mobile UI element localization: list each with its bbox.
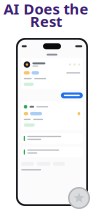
button[interactable] [21,147,83,157]
button[interactable] [21,133,83,144]
button[interactable] [21,102,83,130]
staticText: AI Does the [3,0,88,18]
staticText: Rest [30,11,62,31]
button[interactable] [61,92,83,98]
button[interactable] [21,58,83,89]
